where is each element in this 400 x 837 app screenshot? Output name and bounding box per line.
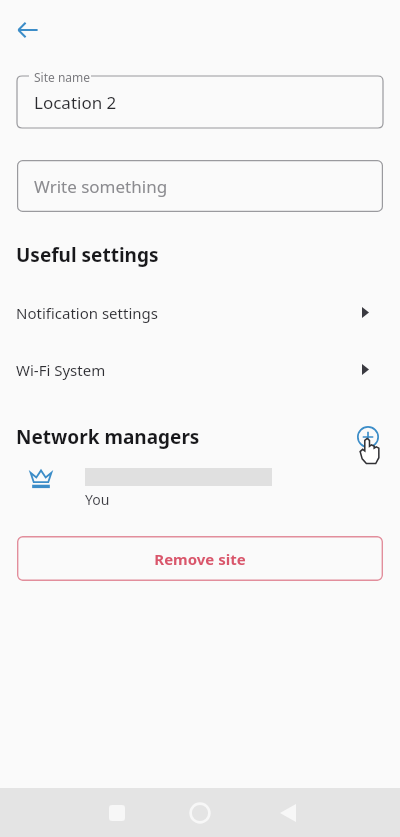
staticText: Site name (34, 69, 91, 85)
staticText: Useful settings (16, 242, 159, 268)
staticText: Location 2 (34, 91, 117, 114)
button[interactable]: Add network manager (356, 425, 380, 449)
staticText: Write something (34, 175, 168, 198)
staticText: Wi-Fi System (16, 360, 106, 380)
staticText: Notification settings (16, 303, 158, 323)
button[interactable]: Notification settings (0, 284, 400, 341)
button[interactable]: Back (271, 796, 305, 830)
button[interactable]: Site name (17, 76, 383, 128)
button[interactable]: Write something (17, 160, 383, 212)
staticText: Network managers (16, 424, 200, 450)
button[interactable]: Remove site (17, 536, 383, 581)
staticText: Remove site (154, 549, 246, 569)
button[interactable]: Recent apps (100, 796, 134, 830)
staticText: You (85, 490, 110, 509)
button[interactable]: Wi-Fi System (0, 341, 400, 398)
button[interactable]: Home (180, 793, 220, 833)
button[interactable]: You (0, 458, 400, 518)
button[interactable]: Back (8, 10, 48, 50)
